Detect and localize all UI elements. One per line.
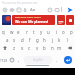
button[interactable]: m bbox=[56, 44, 63, 52]
staticText: f bbox=[29, 37, 31, 43]
button[interactable]: Photo bbox=[2, 15, 11, 25]
staticText: b bbox=[43, 45, 46, 51]
button[interactable]: o bbox=[60, 28, 67, 36]
button[interactable]: f bbox=[26, 36, 33, 44]
button[interactable]: j bbox=[49, 36, 56, 44]
button[interactable]: Add bbox=[1, 6, 8, 13]
staticText: r bbox=[26, 29, 28, 35]
staticText: , bbox=[18, 57, 20, 63]
button[interactable]: Aa bbox=[29, 6, 36, 13]
button[interactable]: Sticker bbox=[66, 15, 74, 25]
button[interactable]: ?123 bbox=[0, 56, 8, 64]
button[interactable]: Shift bbox=[1, 44, 9, 52]
button[interactable]: Backspace bbox=[66, 44, 74, 52]
staticText: y bbox=[40, 29, 43, 35]
button[interactable]: BREAKING NEWS TODAY bbox=[12, 15, 55, 25]
staticText: . bbox=[56, 57, 58, 63]
staticText: w bbox=[10, 29, 14, 35]
staticText: o bbox=[62, 29, 65, 35]
staticText: k bbox=[58, 37, 61, 43]
button[interactable]: , bbox=[16, 56, 22, 64]
staticText: u bbox=[47, 29, 50, 35]
button[interactable]: p bbox=[68, 28, 75, 36]
button[interactable]: . bbox=[54, 56, 60, 64]
staticText: i bbox=[56, 29, 58, 35]
staticText: e bbox=[17, 29, 20, 35]
staticText: Aa bbox=[30, 7, 36, 13]
staticText: h bbox=[43, 37, 46, 43]
staticText: g bbox=[36, 37, 39, 43]
staticText: We can life planned bbox=[15, 19, 48, 24]
button[interactable]: t bbox=[30, 28, 37, 36]
button[interactable]: w bbox=[8, 28, 15, 36]
button[interactable]: Emoji bbox=[46, 6, 53, 13]
button[interactable]: d bbox=[19, 36, 26, 44]
button[interactable]: x bbox=[19, 44, 26, 52]
button[interactable]: Sticker bbox=[57, 15, 65, 25]
button[interactable]: k bbox=[56, 36, 63, 44]
button[interactable]: h bbox=[41, 36, 48, 44]
button[interactable]: Mic bbox=[21, 6, 28, 13]
button[interactable]: Camera bbox=[8, 6, 15, 13]
staticText: j bbox=[52, 37, 54, 43]
button[interactable]: q bbox=[0, 28, 7, 36]
staticText: s bbox=[13, 37, 16, 43]
button[interactable]: Enter bbox=[64, 56, 72, 64]
staticText: p bbox=[70, 29, 73, 35]
button[interactable]: Space bbox=[24, 56, 52, 64]
staticText: You can use the previous one bbox=[2, 1, 38, 5]
button[interactable]: GIF bbox=[53, 6, 60, 13]
button[interactable]: Emoji bbox=[8, 56, 16, 64]
button[interactable]: a bbox=[4, 36, 11, 44]
staticText: BREAKING NEWS TODAY bbox=[15, 16, 42, 19]
button[interactable]: v bbox=[34, 44, 41, 52]
button[interactable]: Gallery bbox=[15, 6, 22, 13]
button[interactable]: u bbox=[45, 28, 52, 36]
staticText: q bbox=[2, 29, 5, 35]
button[interactable]: n bbox=[49, 44, 56, 52]
staticText: c bbox=[28, 45, 31, 51]
staticText: d bbox=[21, 37, 24, 43]
staticText: m bbox=[57, 45, 62, 51]
button[interactable]: r bbox=[23, 28, 30, 36]
button[interactable]: e bbox=[15, 28, 22, 36]
staticText: z bbox=[13, 45, 16, 51]
button[interactable]: g bbox=[34, 36, 41, 44]
button[interactable]: y bbox=[38, 28, 45, 36]
button[interactable]: b bbox=[41, 44, 48, 52]
staticText: a bbox=[6, 37, 9, 43]
staticText: l bbox=[67, 37, 69, 43]
button[interactable]: l bbox=[64, 36, 71, 44]
button[interactable]: i bbox=[53, 28, 60, 36]
staticText: English bbox=[33, 58, 43, 62]
staticText: ?123 bbox=[0, 58, 8, 63]
button[interactable]: Send bbox=[66, 6, 73, 13]
staticText: t bbox=[33, 29, 35, 35]
button[interactable]: s bbox=[11, 36, 18, 44]
button[interactable]: z bbox=[11, 44, 18, 52]
button[interactable]: c bbox=[26, 44, 33, 52]
staticText: n bbox=[51, 45, 54, 51]
staticText: v bbox=[36, 45, 39, 51]
staticText: x bbox=[21, 45, 24, 51]
